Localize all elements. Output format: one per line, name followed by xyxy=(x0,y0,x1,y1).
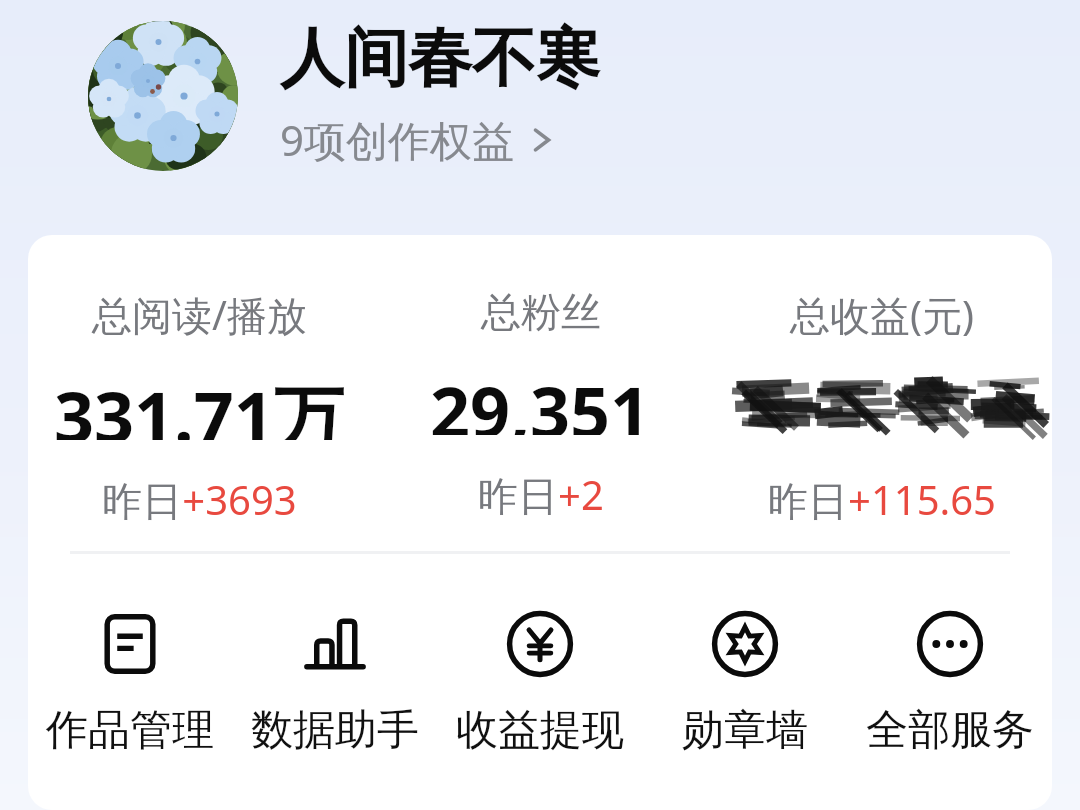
button[interactable]: 作品管理 xyxy=(28,606,232,757)
staticText: 29,351 xyxy=(430,363,651,435)
staticText: 总收益(元) xyxy=(790,287,974,342)
staticText: 总粉丝 xyxy=(481,287,601,337)
staticText: 全部服务 xyxy=(866,704,1034,757)
button[interactable]: 全部服务 xyxy=(847,606,1052,757)
button[interactable]: 勋章墙 xyxy=(642,606,847,757)
staticText: 收益提现 xyxy=(456,704,624,757)
button[interactable]: 数据助手 xyxy=(232,606,437,757)
button[interactable]: 收益提现 xyxy=(437,606,642,757)
staticText: 331.71万 xyxy=(54,368,344,440)
staticText: 昨日+115.65 xyxy=(768,472,996,527)
button[interactable]: 总粉丝 xyxy=(370,287,711,522)
button[interactable]: 总收益(元) xyxy=(711,287,1052,527)
staticText: 作品管理 xyxy=(46,704,214,757)
button[interactable]: 总阅读/播放 xyxy=(28,287,370,527)
button[interactable]: 9项创作权益 xyxy=(280,111,555,168)
staticText: 总阅读/播放 xyxy=(92,287,307,342)
staticText: 人间春不寒 xyxy=(280,18,600,99)
staticText: 勋章墙 xyxy=(682,704,808,757)
staticText: 9项创作权益 xyxy=(280,111,515,168)
button[interactable]: 人间春不寒 xyxy=(88,18,600,174)
staticText: 昨日+3693 xyxy=(102,472,297,527)
staticText: 昨日+2 xyxy=(478,467,604,522)
staticText: 数据助手 xyxy=(251,704,419,757)
